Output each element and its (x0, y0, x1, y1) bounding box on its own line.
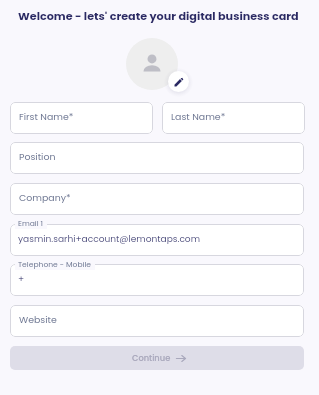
button[interactable]: yasmin.sarhi+account@lemontaps.com (10, 224, 304, 256)
button[interactable]: Position (10, 142, 304, 174)
staticText: Website (19, 313, 57, 326)
button[interactable]: Last Name* (162, 102, 305, 134)
staticText: Welcome - lets' create your digital busi… (18, 8, 299, 24)
staticText: Last Name* (171, 110, 226, 123)
button[interactable]: Continue (10, 346, 304, 370)
staticText: Company* (19, 191, 71, 204)
staticText: + (18, 272, 25, 285)
button[interactable]: Website (10, 305, 304, 337)
staticText: Continue (132, 352, 171, 364)
staticText: yasmin.sarhi+account@lemontaps.com (18, 232, 200, 245)
staticText: Position (19, 150, 56, 163)
staticText: Email 1 (18, 218, 44, 229)
button[interactable]: Edit photo (168, 71, 189, 92)
staticText: Telephone - Mobile (18, 259, 92, 270)
button[interactable]: Company* (10, 183, 304, 215)
button[interactable]: + (10, 264, 304, 296)
button[interactable]: Profile photo (126, 38, 178, 90)
staticText: First Name* (19, 110, 74, 123)
button[interactable]: First Name* (10, 102, 153, 134)
